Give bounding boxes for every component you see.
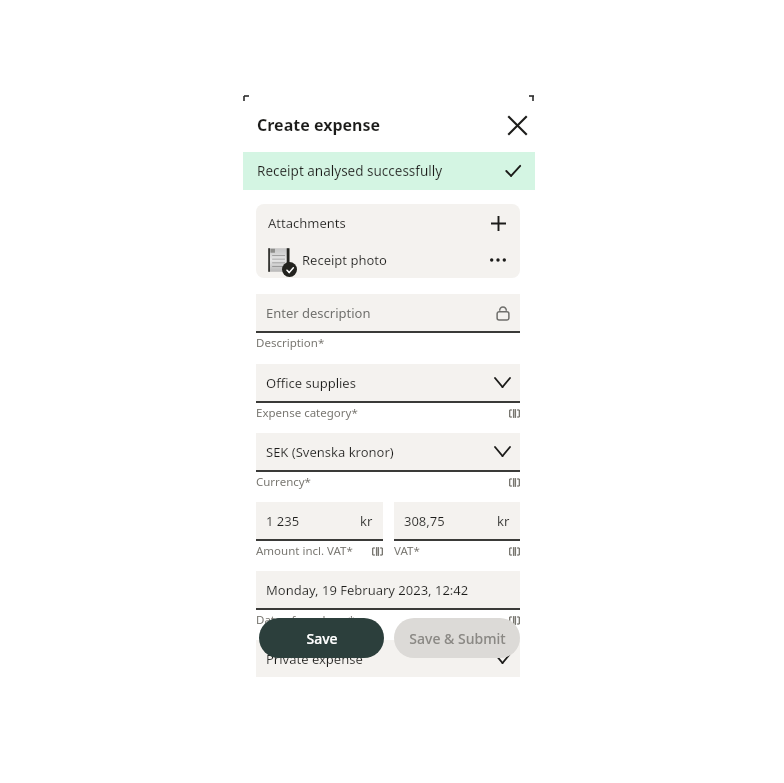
button[interactable]: Close — [499, 108, 535, 142]
staticText: Currency* — [256, 474, 311, 490]
staticText: kr — [497, 512, 510, 530]
staticText: SEK (Svenska kronor) — [266, 443, 394, 461]
staticText: Description* — [256, 335, 325, 351]
staticText: Expense category* — [256, 405, 358, 421]
staticText: Save — [306, 629, 338, 648]
button[interactable]: 1 235 — [256, 502, 383, 539]
staticText: Receipt analysed successfully — [257, 162, 443, 180]
staticText: Save & Submit — [409, 629, 506, 648]
staticText: kr — [360, 512, 373, 530]
button[interactable]: Monday, 19 February 2023, 12:42 — [256, 571, 520, 608]
button[interactable]: Receipt photo — [256, 241, 520, 278]
staticText: 1 235 — [266, 512, 300, 530]
button[interactable]: Private expense — [256, 640, 520, 677]
staticText: Create expense — [257, 114, 381, 136]
staticText: Enter description — [266, 304, 371, 322]
staticText: Private expense — [266, 650, 363, 668]
staticText: Office supplies — [266, 374, 356, 392]
button[interactable]: Enter description — [256, 294, 520, 331]
button[interactable]: Receipt analysed successfully — [243, 152, 535, 190]
staticText: Amount incl. VAT* — [256, 543, 353, 559]
staticText: Attachments — [268, 214, 346, 232]
staticText: 308,75 — [404, 512, 445, 530]
button[interactable]: Save & Submit — [394, 618, 520, 658]
button[interactable]: 308,75 — [394, 502, 520, 539]
button[interactable]: Add attachment — [484, 209, 512, 237]
staticText: Date of purchase* — [256, 612, 355, 628]
button[interactable]: Save — [259, 618, 384, 658]
staticText: Receipt photo — [302, 251, 387, 269]
button[interactable]: More options — [484, 246, 512, 274]
button[interactable]: Office supplies — [256, 364, 520, 401]
staticText: Monday, 19 February 2023, 12:42 — [266, 581, 469, 599]
button[interactable]: SEK (Svenska kronor) — [256, 433, 520, 470]
staticText: VAT* — [394, 543, 420, 559]
